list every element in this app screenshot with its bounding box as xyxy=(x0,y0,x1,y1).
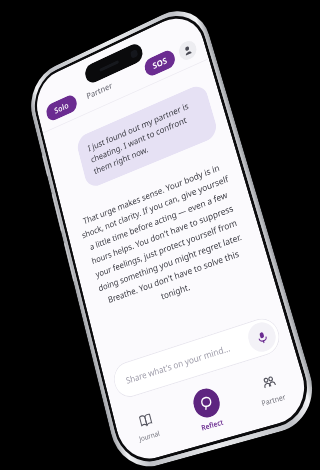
button[interactable]: Partner xyxy=(235,366,308,414)
button[interactable]: Reflect xyxy=(172,380,245,438)
button[interactable]: I just found out my partner is cheating.… xyxy=(75,82,219,190)
staticText: Share what's on your mind... xyxy=(125,342,232,387)
button[interactable]: Partner xyxy=(79,73,121,107)
staticText: Journal xyxy=(138,428,161,443)
button[interactable]: Journal xyxy=(115,404,181,449)
staticText: I just found out my partner is cheating.… xyxy=(87,96,206,177)
staticText: Reflect xyxy=(200,417,225,432)
button[interactable]: Solo xyxy=(45,93,79,123)
staticText: Partner xyxy=(85,79,114,102)
staticText: SOS xyxy=(151,55,168,72)
button[interactable]: Profile xyxy=(177,38,199,63)
button[interactable]: SOS xyxy=(143,48,177,78)
staticText: Solo xyxy=(53,99,70,116)
staticText: That urge makes sense. Your body is in s… xyxy=(76,159,257,323)
button[interactable]: Share what's on your mind... xyxy=(110,314,284,401)
staticText: Partner xyxy=(260,391,287,408)
button[interactable]: Voice input xyxy=(245,319,279,355)
